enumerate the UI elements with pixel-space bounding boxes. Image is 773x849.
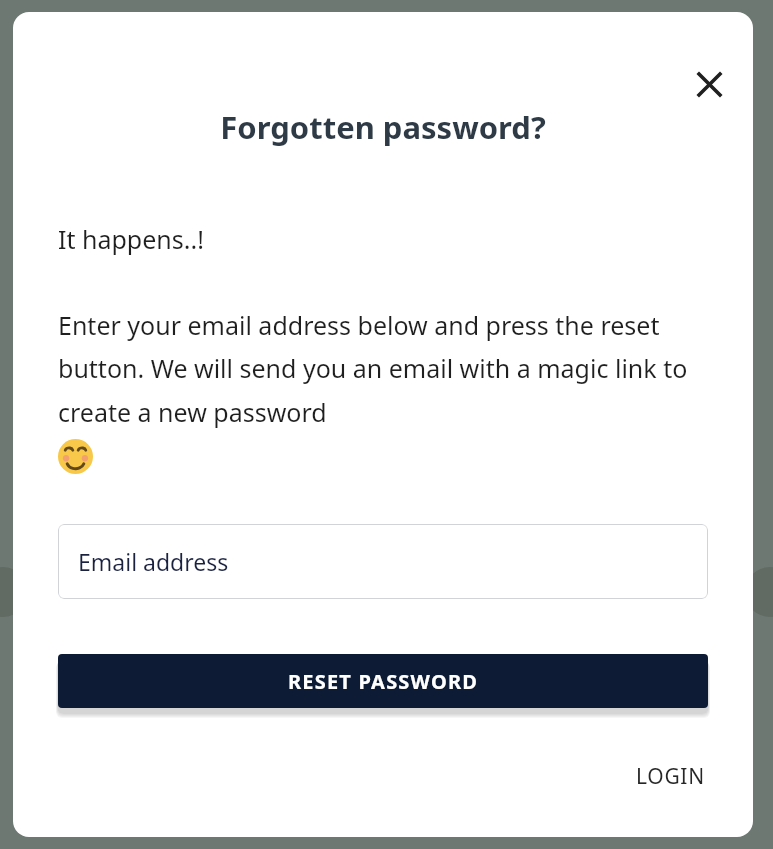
staticText: It happens..! <box>58 222 204 256</box>
staticText: LOGIN <box>636 762 705 791</box>
button[interactable]: RESET PASSWORD <box>58 654 708 708</box>
button[interactable]: Close <box>683 58 735 110</box>
staticText: Enter your email address below and press… <box>58 308 700 429</box>
staticText: Email address <box>78 546 229 577</box>
staticText: Forgotten password? <box>13 106 753 148</box>
button[interactable]: LOGIN <box>605 748 705 804</box>
staticText: RESET PASSWORD <box>288 668 479 695</box>
button[interactable]: Email address <box>58 524 708 599</box>
